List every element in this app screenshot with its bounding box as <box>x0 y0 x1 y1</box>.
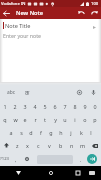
staticText: ?123 <box>0 156 10 162</box>
staticText: Vodafone IN <box>1 1 26 7</box>
staticText: 6 <box>53 103 57 110</box>
staticText: 7 <box>63 103 67 110</box>
staticText: 100 <box>91 1 99 7</box>
button[interactable]: 3 <box>20 100 30 113</box>
button[interactable]: Undo <box>75 7 88 19</box>
button[interactable]: 1 <box>0 100 10 113</box>
button[interactable]: n <box>66 139 77 152</box>
button[interactable]: Redo <box>88 7 101 19</box>
staticText: o <box>83 116 87 123</box>
button[interactable]: Shift <box>0 139 12 152</box>
button[interactable]: s <box>16 126 26 139</box>
button[interactable]: v <box>44 139 55 152</box>
button[interactable]: p <box>90 113 100 126</box>
button[interactable]: Emoji <box>22 152 32 166</box>
staticText: u <box>63 116 67 123</box>
staticText: f <box>40 129 42 136</box>
staticText: h <box>59 129 63 136</box>
staticText: b <box>59 142 63 149</box>
staticText: s <box>20 129 23 136</box>
button[interactable]: a <box>5 126 16 139</box>
staticText: e <box>23 116 27 123</box>
button[interactable]: Period <box>75 152 87 166</box>
staticText: q <box>3 116 7 123</box>
button[interactable]: z <box>12 139 22 152</box>
staticText: j <box>70 129 72 136</box>
button[interactable]: d <box>26 126 36 139</box>
button[interactable]: q <box>0 113 10 126</box>
button[interactable]: 8 <box>70 100 80 113</box>
staticText: t <box>44 116 46 123</box>
staticText: 9 <box>83 103 87 110</box>
staticText: 1 <box>3 103 7 110</box>
staticText: i <box>74 116 76 123</box>
button[interactable]: Navigate up <box>0 7 13 19</box>
button[interactable]: Hide keyboard <box>86 166 98 180</box>
staticText: v <box>48 142 51 149</box>
button[interactable]: y <box>50 113 60 126</box>
staticText: क <box>25 89 30 97</box>
button[interactable]: abc <box>0 85 22 100</box>
button[interactable]: l <box>86 126 96 139</box>
staticText: Enter your note <box>3 32 42 39</box>
button[interactable]: Recent apps <box>72 166 84 180</box>
staticText: n <box>70 142 74 149</box>
staticText: x <box>26 142 29 149</box>
button[interactable]: u <box>60 113 70 126</box>
staticText: , <box>15 156 17 163</box>
button[interactable]: Comma <box>10 152 22 166</box>
button[interactable]: r <box>30 113 40 126</box>
button[interactable]: i <box>70 113 80 126</box>
button[interactable]: k <box>76 126 86 139</box>
staticText: 3 <box>23 103 27 110</box>
staticText: y <box>54 116 57 123</box>
button[interactable]: m <box>77 139 88 152</box>
button[interactable]: o <box>80 113 90 126</box>
button[interactable]: g <box>46 126 56 139</box>
staticText: 8 <box>73 103 77 110</box>
button[interactable]: 5 <box>40 100 50 113</box>
button[interactable]: j <box>66 126 76 139</box>
staticText: 2 <box>13 103 17 110</box>
staticText: g <box>49 129 53 136</box>
button[interactable]: t <box>40 113 50 126</box>
staticText: New Note <box>16 9 43 17</box>
staticText: 0 <box>93 103 97 110</box>
button[interactable]: w <box>10 113 20 126</box>
button[interactable]: c <box>33 139 44 152</box>
staticText: abc <box>7 89 15 96</box>
button[interactable]: e <box>20 113 30 126</box>
button[interactable]: 6 <box>50 100 60 113</box>
button[interactable]: ?123 <box>0 152 10 166</box>
staticText: . <box>80 156 82 163</box>
button[interactable]: Backspace <box>88 139 101 152</box>
staticText: w <box>13 116 18 123</box>
button[interactable]: 9 <box>80 100 90 113</box>
staticText: l <box>90 129 92 136</box>
staticText: a <box>9 129 13 136</box>
button[interactable]: Home <box>45 166 57 180</box>
button[interactable]: 4 <box>30 100 40 113</box>
staticText: c <box>37 142 40 149</box>
staticText: 5 <box>43 103 47 110</box>
staticText: z <box>16 142 19 149</box>
staticText: p <box>93 116 97 123</box>
staticText: 4 <box>33 103 37 110</box>
button[interactable]: क <box>22 85 32 100</box>
staticText: m <box>80 142 86 149</box>
staticText: k <box>80 129 83 136</box>
button[interactable]: b <box>55 139 66 152</box>
button[interactable]: f <box>36 126 46 139</box>
button[interactable]: x <box>22 139 33 152</box>
staticText: r <box>34 116 37 123</box>
button[interactable]: Settings <box>73 85 85 100</box>
button[interactable]: 2 <box>10 100 20 113</box>
staticText: Note Title <box>5 22 31 30</box>
button[interactable]: Voice input <box>85 85 101 100</box>
button[interactable]: h <box>56 126 66 139</box>
button[interactable]: 0 <box>90 100 100 113</box>
button[interactable]: 7 <box>60 100 70 113</box>
button[interactable]: Enter <box>87 154 97 164</box>
button[interactable]: Back <box>12 166 24 180</box>
